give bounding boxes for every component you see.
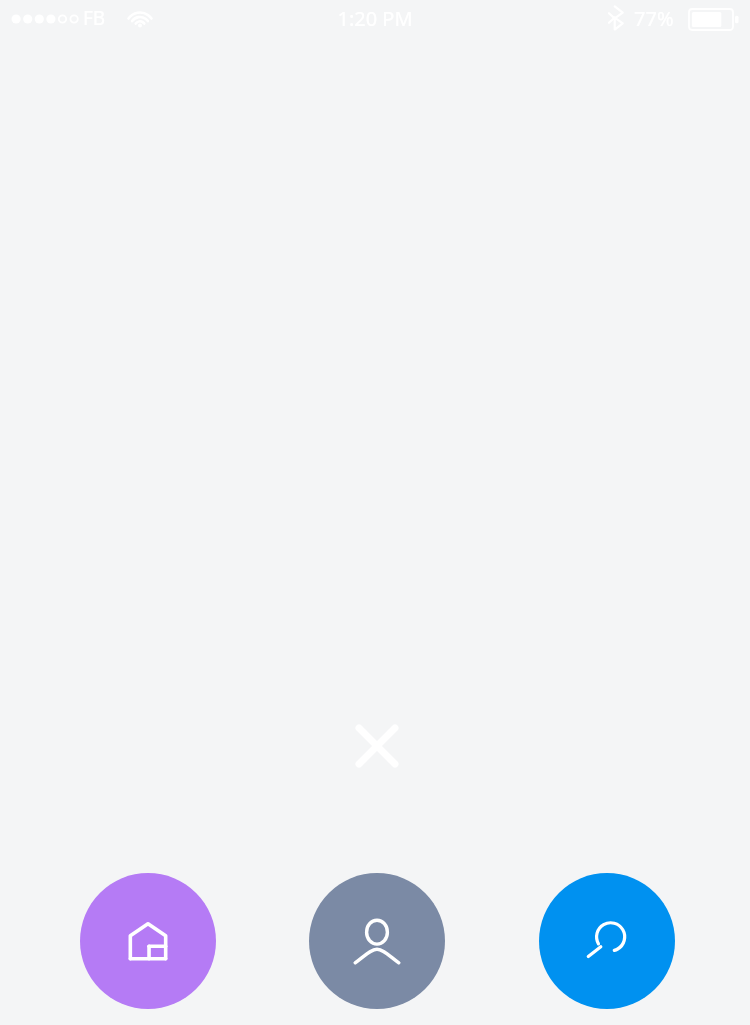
button[interactable]: Search (539, 873, 675, 1009)
staticText: 77% (634, 5, 674, 32)
button[interactable]: Profile (309, 873, 445, 1009)
button[interactable]: Close (353, 722, 401, 770)
staticText: 1:20 PM (337, 5, 413, 32)
staticText: FB (83, 5, 106, 31)
button[interactable]: Home (80, 873, 216, 1009)
